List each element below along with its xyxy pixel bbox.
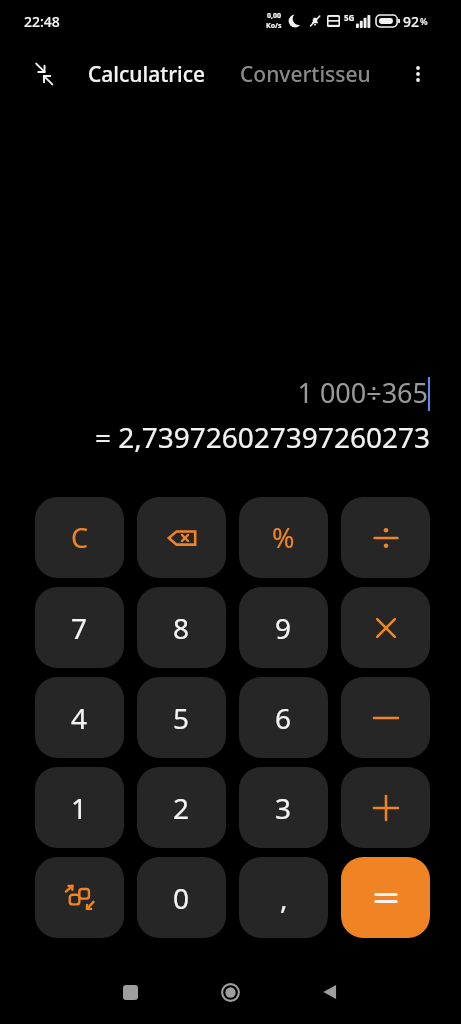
button[interactable]: 7: [35, 587, 124, 668]
button[interactable]: Scientific functions: [35, 857, 124, 938]
button[interactable]: More options: [396, 52, 440, 96]
button[interactable]: Collapse: [22, 52, 66, 96]
staticText: 0,00: [267, 11, 282, 21]
staticText: %: [420, 15, 428, 27]
staticText: 6: [275, 699, 292, 737]
button[interactable]: Plus: [341, 767, 430, 848]
staticText: ,: [280, 879, 288, 917]
button[interactable]: Recents: [110, 972, 150, 1012]
button[interactable]: 1: [35, 767, 124, 848]
staticText: 0: [173, 879, 190, 917]
button[interactable]: Backspace: [137, 497, 226, 578]
button[interactable]: 9: [239, 587, 328, 668]
button[interactable]: C: [35, 497, 124, 578]
staticText: 22:48: [24, 12, 60, 31]
button[interactable]: 8: [137, 587, 226, 668]
button[interactable]: Back: [310, 972, 350, 1012]
staticText: 9: [275, 609, 292, 647]
staticText: 3: [275, 789, 292, 827]
button[interactable]: 3: [239, 767, 328, 848]
button[interactable]: Minus: [341, 677, 430, 758]
staticText: 1: [71, 789, 88, 827]
staticText: 2: [173, 789, 190, 827]
staticText: 1 000÷365: [297, 374, 428, 411]
staticText: 5: [173, 699, 190, 737]
button[interactable]: ,: [239, 857, 328, 938]
button[interactable]: Home: [210, 972, 250, 1012]
button[interactable]: Multiply: [341, 587, 430, 668]
button[interactable]: 5: [137, 677, 226, 758]
button[interactable]: %: [239, 497, 328, 578]
button[interactable]: Convertisseu: [240, 60, 371, 89]
button[interactable]: 6: [239, 677, 328, 758]
staticText: C: [71, 519, 89, 556]
staticText: Ko/s: [266, 21, 282, 31]
button[interactable]: Calculatrice: [88, 60, 206, 89]
staticText: 5G: [344, 12, 355, 23]
button[interactable]: 0: [137, 857, 226, 938]
staticText: 8: [173, 609, 190, 647]
button[interactable]: 2: [137, 767, 226, 848]
staticText: %: [272, 519, 295, 556]
button[interactable]: Divide: [341, 497, 430, 578]
staticText: 7: [71, 609, 88, 647]
staticText: 4: [71, 699, 88, 737]
staticText: = 2,739726027397260273: [0, 418, 430, 456]
button[interactable]: 4: [35, 677, 124, 758]
button[interactable]: Equals: [341, 857, 430, 938]
staticText: 92: [403, 12, 420, 31]
